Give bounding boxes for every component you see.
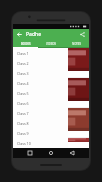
staticText: Class 7 [17,111,29,116]
staticText: Class 6 [17,101,29,106]
staticText: Class 3 [17,71,29,76]
staticText: Chemistry [14,102,29,106]
button[interactable]: Class 2 [13,58,68,68]
staticText: Mathematics [14,72,33,76]
staticText: NOTES [72,42,81,46]
button[interactable]: NOTES [64,40,89,47]
button[interactable]: Share [78,30,87,39]
button[interactable]: Physics [51,48,89,77]
button[interactable]: Back [15,30,24,39]
button[interactable]: Class 8 [13,118,68,128]
button[interactable]: Biology [13,108,50,137]
button[interactable]: Class 4 [13,78,68,88]
staticText: Class 5 [17,91,29,96]
button[interactable]: Class 5 [13,88,68,98]
button[interactable]: Geography [51,138,89,148]
staticText: Biology [14,132,25,136]
staticText: Class 9 [17,131,29,136]
button[interactable]: Civics [13,138,50,148]
button[interactable]: Class 9 [13,128,68,138]
staticText: BOOKS [21,42,31,46]
button[interactable]: Mathematics [13,48,50,77]
staticText: Civics [14,143,22,147]
staticText: Class 8 [17,121,29,126]
button[interactable]: Class 3 [13,68,68,78]
staticText: Padhe [26,31,42,38]
staticText: Class 4 [17,81,29,86]
staticText: Class 1 [17,51,29,56]
button[interactable]: Class 10 [13,138,68,148]
button[interactable]: VIDEOS [39,40,64,47]
staticText: Class 2 [17,61,29,66]
button[interactable]: Part-II [51,78,89,107]
staticText: VIDEOS [46,42,57,46]
button[interactable]: Class 6 [13,98,68,108]
button[interactable]: Back [68,149,76,157]
staticText: Class 10 [17,141,31,146]
button[interactable]: BOOKS [13,40,39,47]
button[interactable]: History [51,108,89,137]
button[interactable]: Home [47,149,55,157]
button[interactable]: Class 1 [13,48,68,58]
button[interactable]: Class 7 [13,108,68,118]
button[interactable]: Recents [26,149,34,157]
button[interactable]: Chemistry [13,78,50,107]
